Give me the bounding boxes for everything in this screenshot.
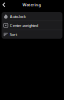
staticText: Center-weighted bbox=[10, 23, 38, 28]
button[interactable]: Auto-lock bbox=[2, 12, 62, 21]
button[interactable]: Back bbox=[0, 0, 8, 9]
button[interactable]: Center-weighted bbox=[2, 21, 62, 30]
staticText: Auto-lock bbox=[10, 14, 26, 19]
staticText: Sort bbox=[10, 32, 17, 37]
button[interactable]: Sort bbox=[2, 30, 62, 39]
staticText: Watering bbox=[22, 2, 41, 7]
